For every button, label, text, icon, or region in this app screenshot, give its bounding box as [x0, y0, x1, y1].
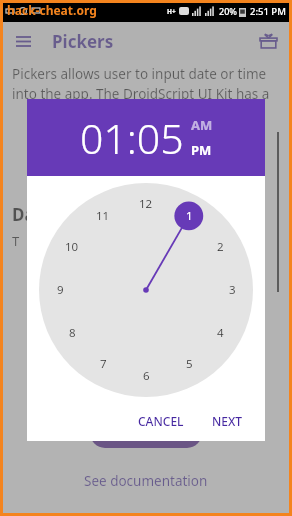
staticText: T — [12, 232, 20, 250]
staticText: Pickers allows user to input date or tim… — [12, 65, 280, 103]
staticText: 6 — [143, 368, 150, 384]
staticText: CANCEL — [138, 413, 184, 429]
staticText: 20% — [219, 5, 237, 17]
button[interactable]: Hour selector clock — [39, 183, 253, 397]
staticText: 2 — [217, 239, 224, 255]
staticText: 8 — [69, 325, 76, 341]
staticText: NEXT — [212, 413, 243, 429]
staticText: Date — [12, 203, 53, 226]
staticText: AM — [191, 116, 213, 134]
staticText: 1 — [186, 208, 193, 224]
staticText: 10 — [65, 239, 79, 255]
staticText: 4 — [217, 325, 224, 341]
button[interactable]: 01:05 — [80, 110, 184, 166]
staticText: H+ — [167, 7, 176, 16]
staticText: 3 — [229, 282, 236, 298]
staticText: 2:51 PM — [250, 5, 286, 18]
button[interactable]: NEXT — [204, 407, 251, 435]
staticText: Pickers — [52, 30, 114, 53]
staticText: 5 — [186, 356, 193, 372]
staticText: 11 — [96, 208, 110, 224]
staticText: 7 — [100, 356, 107, 372]
staticText: 12 — [139, 196, 153, 212]
staticText: hack-cheat.org — [7, 2, 97, 18]
button[interactable]: CANCEL — [130, 407, 192, 435]
button[interactable]: AM — [191, 116, 213, 134]
button[interactable]: Gift — [254, 27, 282, 55]
staticText: 9 — [57, 282, 64, 298]
staticText: See documentation — [84, 472, 208, 490]
button[interactable]: See documentation — [0, 472, 292, 490]
staticText: PM — [191, 141, 212, 159]
button[interactable]: TIME PICKER — [90, 418, 202, 448]
button[interactable]: PM — [191, 141, 212, 159]
button[interactable]: Open navigation menu — [10, 28, 36, 54]
